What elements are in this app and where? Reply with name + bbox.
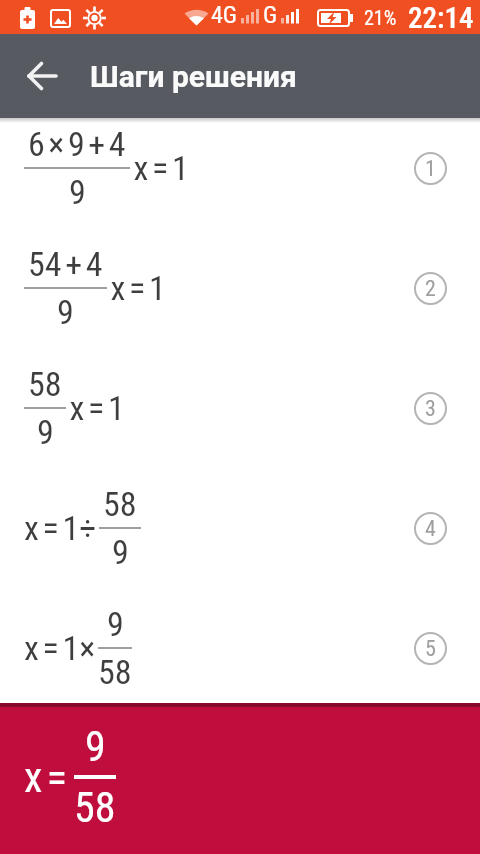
staticText: 58	[98, 652, 132, 692]
staticText: x = 1	[130, 148, 189, 188]
button[interactable]: 54 + 4	[0, 228, 480, 348]
staticText: 2	[425, 276, 436, 302]
button[interactable]: 58	[0, 348, 480, 468]
staticText: Шаги решения	[90, 59, 297, 94]
staticText: 1	[425, 156, 436, 182]
staticText: 9	[85, 722, 106, 771]
button[interactable]: x = 1×	[0, 588, 480, 708]
staticText: 9	[107, 604, 124, 644]
staticText: 3	[425, 396, 436, 422]
staticText: 9	[112, 532, 129, 572]
staticText: x = 1÷	[24, 508, 97, 548]
staticText: x =	[24, 753, 67, 802]
staticText: 4	[425, 516, 436, 542]
staticText: x = 1	[107, 268, 166, 308]
staticText: 4G	[211, 1, 238, 29]
staticText: 6 × 9 + 4	[28, 124, 126, 164]
staticText: 9	[37, 412, 54, 452]
button[interactable]: x =	[0, 707, 480, 854]
staticText: 58	[103, 484, 137, 524]
staticText: x = 1×	[24, 628, 96, 668]
button[interactable]: 6 × 9 + 4	[0, 108, 480, 228]
button[interactable]	[16, 54, 60, 98]
staticText: 21%	[364, 6, 397, 29]
staticText: 54 + 4	[28, 244, 103, 284]
staticText: 9	[57, 292, 74, 332]
staticText: x = 1	[66, 388, 125, 428]
staticText: 9	[69, 172, 86, 212]
staticText: G	[263, 1, 278, 29]
staticText: 58	[74, 783, 116, 832]
button[interactable]: x = 1÷	[0, 468, 480, 588]
staticText: 5	[425, 636, 436, 662]
staticText: 22:14	[408, 1, 474, 35]
staticText: 58	[28, 364, 62, 404]
